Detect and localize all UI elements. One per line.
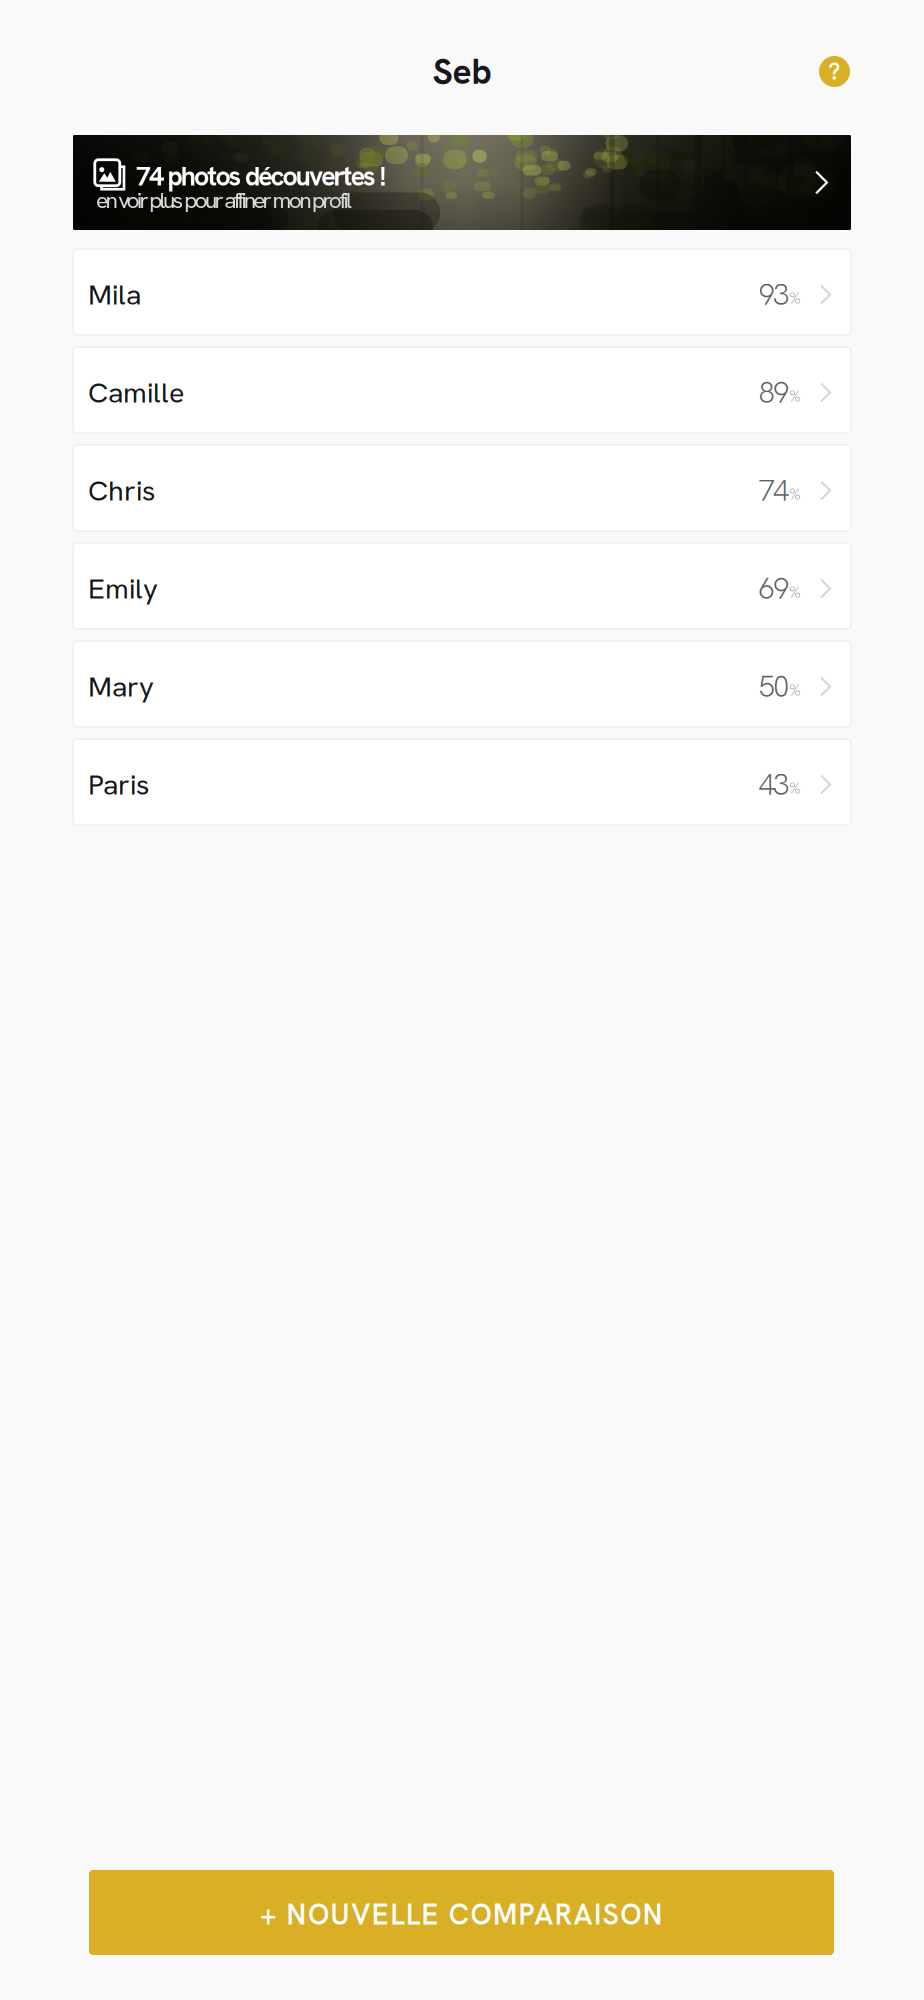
staticText: 74 [758, 471, 789, 510]
staticText: en voir plus pour affiner mon profil [96, 185, 352, 215]
button[interactable]: Mary [73, 641, 851, 727]
button[interactable]: Chris [73, 445, 851, 531]
staticText: Mary [88, 668, 154, 705]
staticText: 43 [758, 765, 789, 804]
staticText: Paris [88, 766, 149, 803]
button[interactable]: Mila [73, 249, 851, 335]
staticText: Chris [88, 472, 155, 509]
staticText: 93 [758, 275, 789, 314]
staticText: % [789, 778, 801, 798]
staticText: 74 photos découvertes ! [136, 159, 386, 194]
button[interactable]: + NOUVELLE COMPARAISON [89, 1870, 834, 1955]
button[interactable]: Emily [73, 543, 851, 629]
button[interactable]: Help [819, 56, 850, 87]
staticText: Emily [88, 570, 158, 607]
staticText: + NOUVELLE COMPARAISON [260, 1896, 663, 1933]
staticText: Seb [432, 48, 491, 94]
staticText: Camille [88, 374, 184, 411]
staticText: 50 [758, 667, 789, 706]
staticText: % [789, 582, 801, 602]
staticText: 69 [758, 569, 789, 608]
button[interactable]: Paris [73, 739, 851, 825]
staticText: 89 [758, 373, 789, 412]
staticText: % [789, 484, 801, 504]
staticText: ? [828, 57, 840, 86]
button[interactable]: Camille [73, 347, 851, 433]
staticText: Mila [88, 276, 141, 313]
staticText: % [789, 680, 801, 700]
staticText: % [789, 386, 801, 406]
staticText: % [789, 288, 801, 308]
button[interactable]: 74 photos découvertes ! [73, 135, 851, 230]
